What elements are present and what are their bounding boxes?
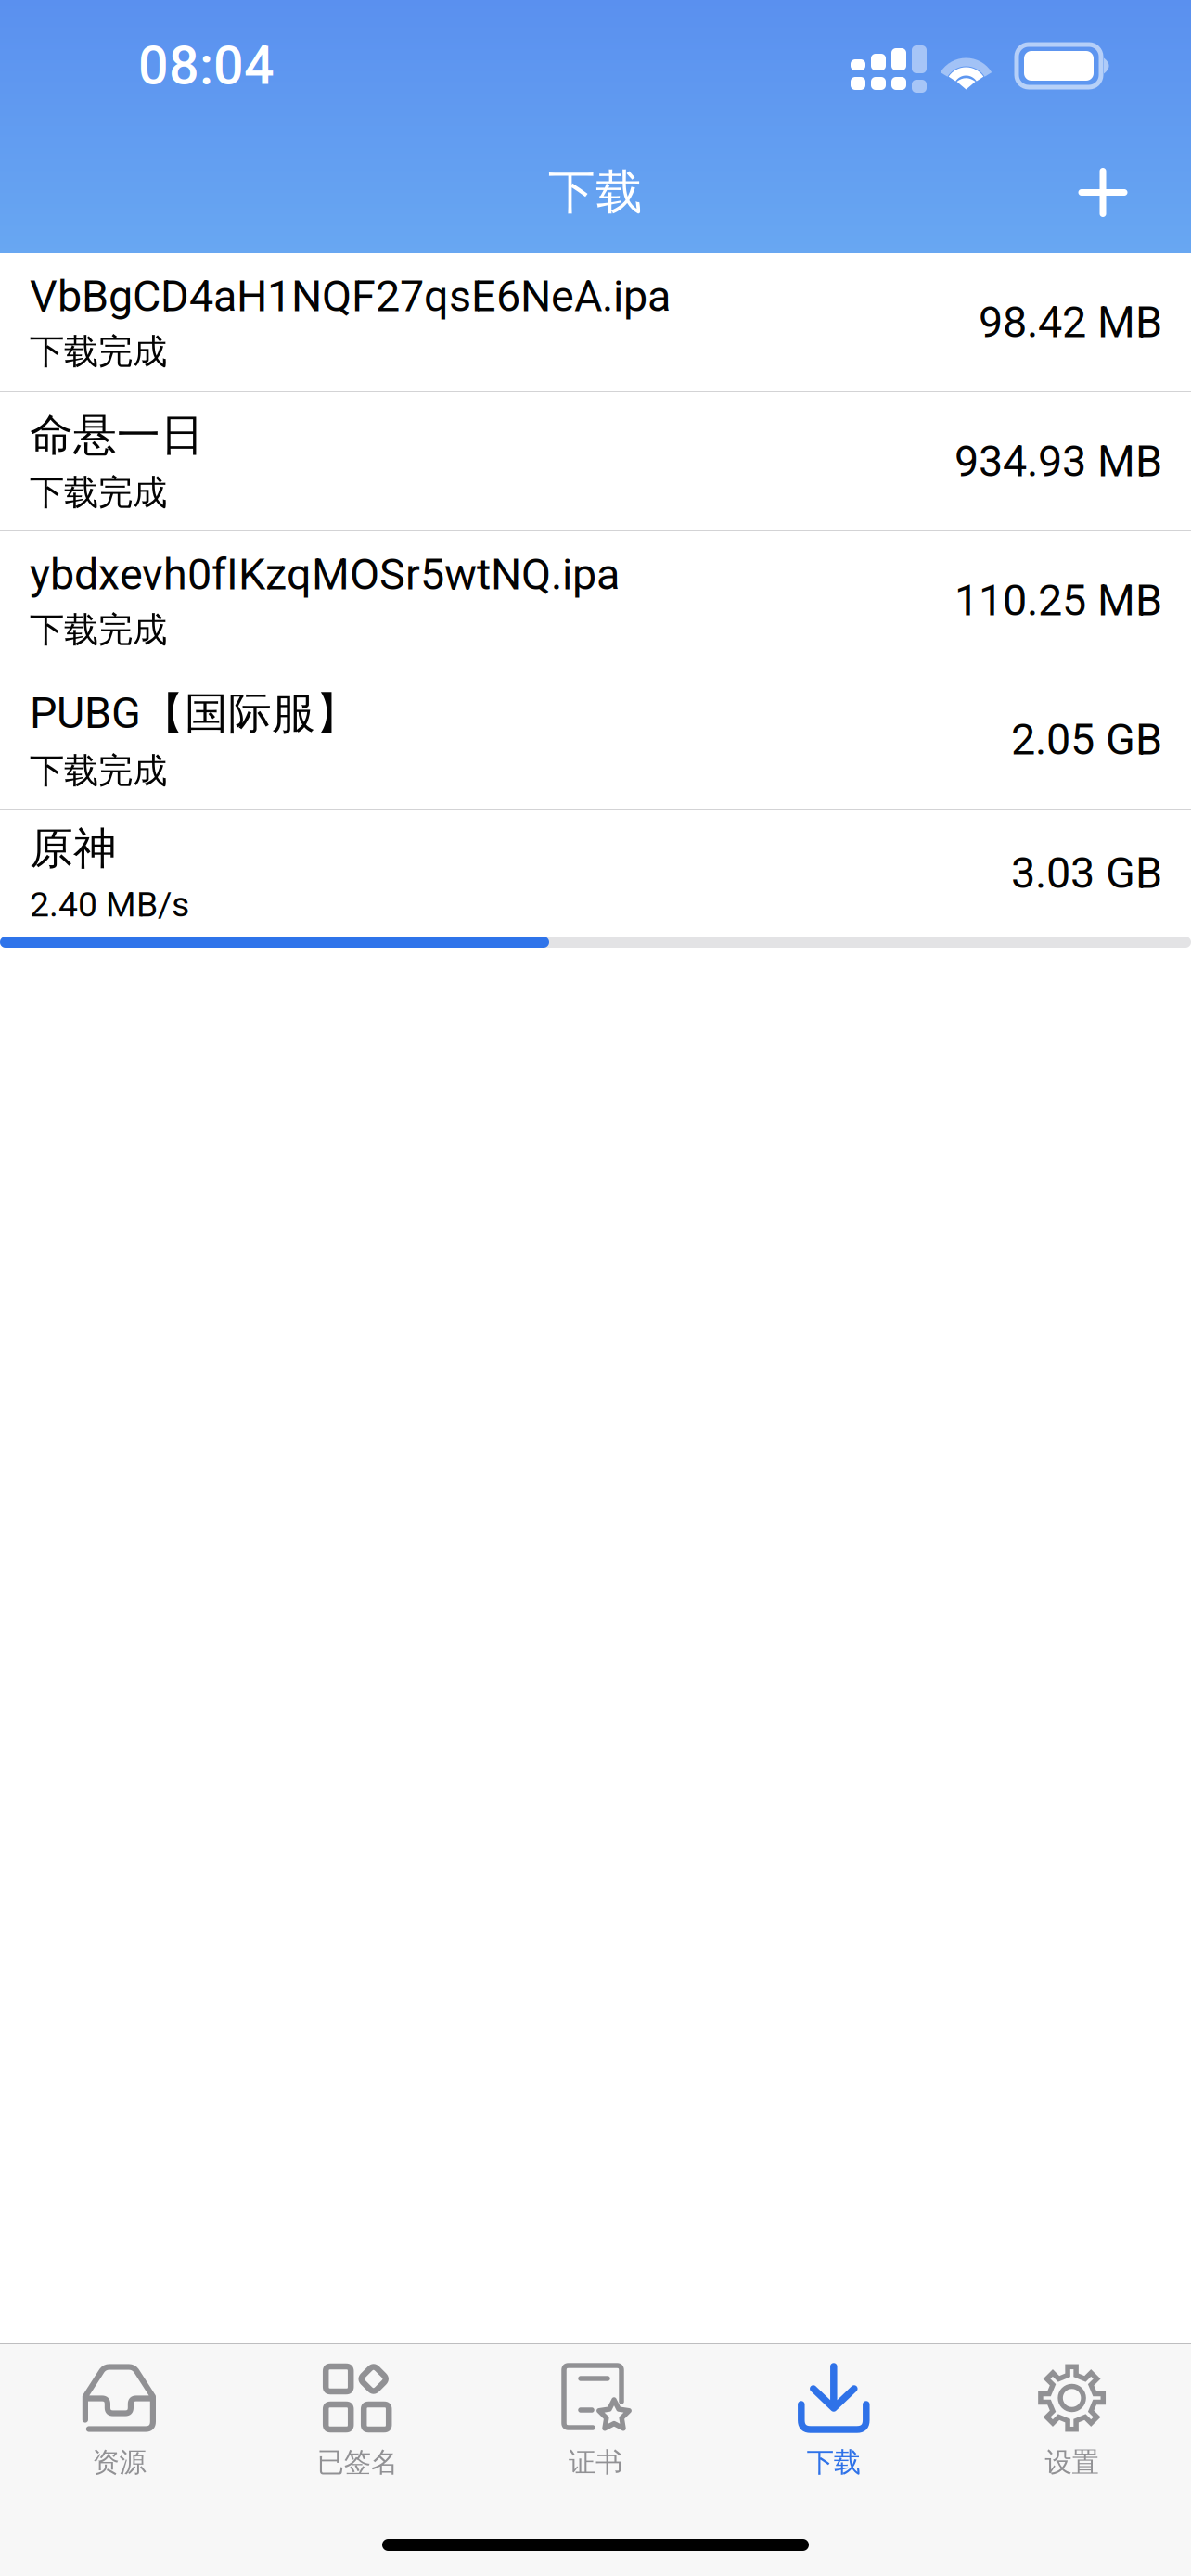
staticText: ybdxevh0fIKzqMOSr5wtNQ.ipa bbox=[30, 549, 620, 600]
staticText: 下载 bbox=[807, 2445, 861, 2480]
button[interactable]: 证书 bbox=[476, 2344, 715, 2502]
button[interactable]: VbBgCD4aH1NQF27qsE6NeA.ipa bbox=[0, 253, 1191, 392]
staticText: 命悬一日 bbox=[30, 408, 204, 463]
staticText: 下载完成 bbox=[30, 330, 167, 374]
staticText: 设置 bbox=[1045, 2445, 1099, 2480]
staticText: 98.42 MB bbox=[979, 297, 1162, 348]
staticText: 已签名 bbox=[317, 2445, 398, 2480]
button[interactable]: 命悬一日 bbox=[0, 392, 1191, 531]
button[interactable]: 原神 bbox=[0, 810, 1191, 948]
staticText: 2.40 MB/s bbox=[30, 884, 189, 925]
staticText: 下载完成 bbox=[30, 471, 167, 515]
staticText: 3.03 GB bbox=[1011, 848, 1162, 898]
staticText: 下载完成 bbox=[30, 608, 167, 652]
staticText: VbBgCD4aH1NQF27qsE6NeA.ipa bbox=[30, 271, 671, 322]
button[interactable]: 下载 bbox=[715, 2344, 953, 2502]
button[interactable]: ybdxevh0fIKzqMOSr5wtNQ.ipa bbox=[0, 531, 1191, 670]
button[interactable]: Add download bbox=[1052, 141, 1154, 243]
staticText: 资源 bbox=[92, 2445, 146, 2480]
staticText: 934.93 MB bbox=[954, 436, 1162, 487]
staticText: 2.05 GB bbox=[1011, 714, 1162, 765]
button[interactable]: 已签名 bbox=[238, 2344, 476, 2502]
staticText: 08:04 bbox=[138, 35, 275, 97]
staticText: 证书 bbox=[569, 2445, 622, 2480]
button[interactable]: PUBG【国际服】 bbox=[0, 670, 1191, 810]
staticText: 下载 bbox=[548, 163, 643, 222]
staticText: 下载完成 bbox=[30, 749, 167, 793]
button[interactable]: 资源 bbox=[0, 2344, 238, 2502]
staticText: 110.25 MB bbox=[954, 575, 1162, 626]
button[interactable]: 设置 bbox=[953, 2344, 1191, 2502]
staticText: 原神 bbox=[30, 821, 117, 876]
staticText: PUBG【国际服】 bbox=[30, 686, 359, 741]
